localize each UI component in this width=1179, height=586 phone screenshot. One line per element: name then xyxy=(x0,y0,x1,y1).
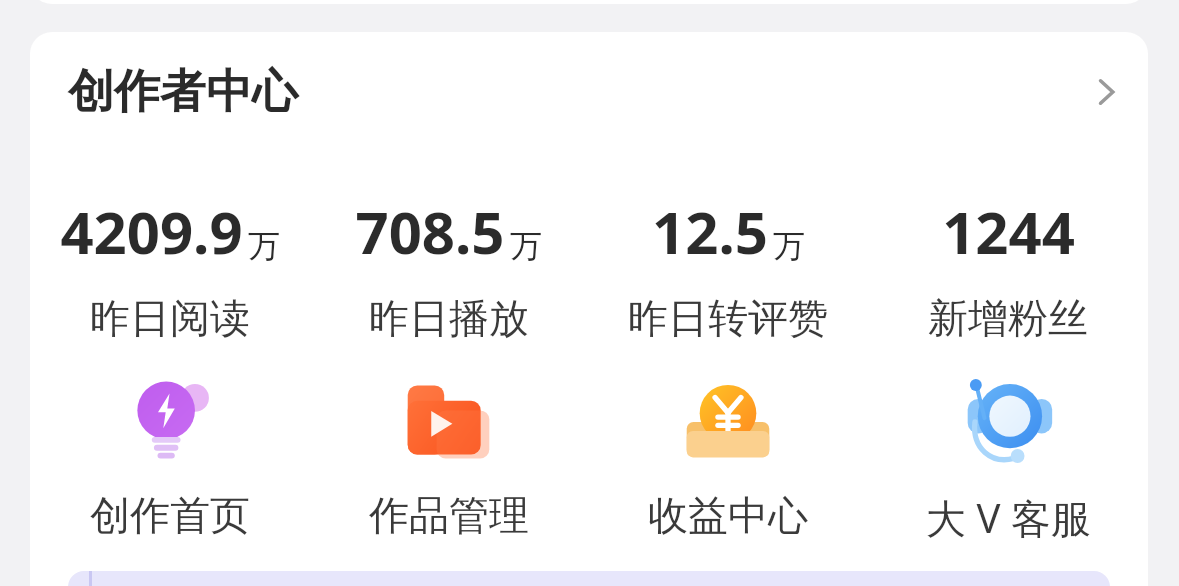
button[interactable]: 收益中心 xyxy=(588,372,868,540)
staticText: 万 xyxy=(773,226,805,266)
button[interactable]: 创作首页 xyxy=(30,372,309,540)
other: 进入创作者中心 xyxy=(1076,62,1136,122)
staticText: 昨日播放 xyxy=(369,293,529,343)
button[interactable]: 作品管理 xyxy=(309,372,588,540)
staticText: 708.5 xyxy=(355,192,505,271)
button[interactable]: 12.5 xyxy=(588,192,868,343)
staticText: 大 V 客服 xyxy=(926,490,1091,545)
staticText: 12.5 xyxy=(652,192,768,271)
staticText: 创作首页 xyxy=(90,490,250,540)
button[interactable]: 4209.9 xyxy=(30,192,309,343)
staticText: 创作者中心 xyxy=(68,63,298,121)
staticText: 1244 xyxy=(942,192,1075,271)
button[interactable]: 708.5 xyxy=(309,192,588,343)
button[interactable]: 大 V 客服 xyxy=(868,372,1148,545)
staticText: 4209.9 xyxy=(60,192,243,271)
staticText: 作品管理 xyxy=(369,490,529,540)
button[interactable]: 创作者中心 xyxy=(30,32,1148,152)
button[interactable]: 1244 xyxy=(868,192,1148,343)
staticText: 万 xyxy=(510,226,542,266)
staticText: 万 xyxy=(248,226,280,266)
staticText: 昨日转评赞 xyxy=(628,293,828,343)
staticText: 收益中心 xyxy=(648,490,808,540)
staticText: 昨日阅读 xyxy=(90,293,250,343)
staticText: 新增粉丝 xyxy=(928,293,1088,343)
